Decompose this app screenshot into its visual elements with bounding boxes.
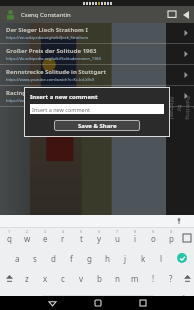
button[interactable]: Emoji [172,289,194,310]
button[interactable]: Home [75,296,120,310]
button[interactable]: c [54,268,72,289]
button[interactable]: Save & Share [54,120,140,131]
button[interactable] [180,268,194,289]
button[interactable]: v [72,268,90,289]
staticText: https://en.wikipedia.org/wiki/Jock_Strat… [6,35,89,40]
staticText: h [105,253,110,264]
staticText: Der Sieger Llech Strathom I [6,26,88,34]
staticText: j [124,253,127,264]
staticText: ? [169,273,173,284]
staticText: t [80,233,83,244]
staticText: a [15,253,20,264]
staticText: https://de.wikipedia.org/wiki/Solitudere… [6,56,101,61]
button[interactable]: z [18,268,36,289]
button[interactable]: t [72,228,90,248]
staticText: Csenq Constantin [21,11,71,19]
staticText: q [7,233,12,244]
button[interactable]: o [144,228,162,248]
button[interactable]: q [0,228,18,248]
staticText: 3 [44,229,47,234]
staticText: . [162,294,165,305]
button[interactable]: Share [179,9,190,20]
staticText: https://www.youtube.com/watch?v=plq37hZk… [6,98,97,103]
button[interactable]: Voice input [164,215,194,227]
staticText: 5 [80,229,83,234]
button[interactable]: Space [42,295,154,304]
button[interactable]: ? [162,268,180,289]
button[interactable]: , [24,289,42,310]
staticText: 2 [26,229,29,234]
staticText: Racing Classics [6,89,51,97]
button[interactable]: b [90,268,108,289]
staticText: c [61,273,65,284]
staticText: n [115,273,120,284]
button[interactable]: g [80,248,98,268]
button[interactable]: l [152,248,170,268]
staticText: Insert a new comment [30,93,98,101]
button[interactable]: x [36,268,54,289]
button[interactable]: s [26,248,44,268]
staticText: k [141,253,146,264]
staticText: 0 [170,229,173,234]
button[interactable]: ! [144,268,162,289]
staticText: z [25,273,29,284]
button[interactable]: . [154,289,172,310]
staticText: Insert a new comment [32,106,91,113]
staticText: Großer Preis der Solitude 1963 [6,47,97,55]
button[interactable]: e [36,228,54,248]
button[interactable]: i [126,228,144,248]
staticText: i [134,233,137,244]
button[interactable]: Racing Classics [0,86,194,106]
button[interactable]: Cast [166,9,177,20]
button[interactable]: p [162,228,180,248]
button[interactable]: y [90,228,108,248]
button[interactable]: u [108,228,126,248]
staticText: v [79,273,84,284]
button[interactable]: h [98,248,116,268]
staticText: b [97,273,102,284]
button[interactable]: Großer Preis der Solitude 1963 [0,44,194,64]
button[interactable] [180,228,194,248]
staticText: e [43,233,48,244]
button[interactable]: ?123 [0,289,24,310]
staticText: Save & Share [78,122,117,130]
button[interactable]: Account [5,9,16,20]
button[interactable] [0,268,18,289]
staticText: 8 [134,229,137,234]
staticText: Rennstrecke Solitude in Stuttgart [6,68,107,76]
button[interactable]: Enter [170,248,194,268]
staticText: o [151,233,156,244]
staticText: 4 [62,229,65,234]
button[interactable]: j [116,248,134,268]
staticText: ! [152,273,155,284]
staticText: x [43,273,48,284]
button[interactable]: k [134,248,152,268]
button[interactable]: Back [30,296,75,310]
staticText: s [33,253,37,264]
button[interactable]: Der Sieger Llech Strathom I [0,23,194,43]
staticText: y [97,233,102,244]
staticText: l [160,253,163,264]
staticText: r [61,233,65,244]
staticText: 9 [152,229,155,234]
button[interactable]: a [8,248,26,268]
button[interactable]: n [108,268,126,289]
button[interactable]: w [18,228,36,248]
button[interactable]: r [54,228,72,248]
button[interactable]: m [126,268,144,289]
button[interactable]: Rennstrecke Solitude in Stuttgart [0,65,194,85]
staticText: p [169,233,174,244]
staticText: 6 [98,229,101,234]
staticText: u [115,233,120,244]
button[interactable]: f [62,248,80,268]
button[interactable]: Recents [120,296,165,310]
staticText: Original Painting by Michael Turner [160,94,194,122]
button[interactable]: Insert a new comment [30,104,164,114]
staticText: 1 [8,229,11,234]
staticText: , [32,294,35,305]
button[interactable]: d [44,248,62,268]
staticText: g [87,253,92,264]
staticText: https://www.youtube.com/watch?v=Kc-kcLk9… [6,77,95,82]
staticText: w [24,233,31,244]
